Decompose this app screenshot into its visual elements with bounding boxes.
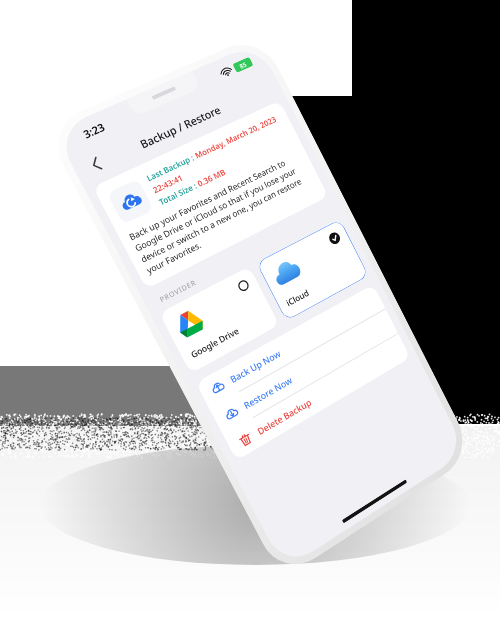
button[interactable]: Google Drive [159,266,279,374]
staticText: Total Size : [157,179,200,207]
staticText: Google Drive [189,325,241,361]
staticText: Back Up Now [228,347,282,385]
staticText: Back up your Favorites and Recent Search… [127,150,317,277]
button[interactable]: Restore Now [209,309,398,434]
staticText: Monday, March 20, 2023 [193,113,278,161]
button[interactable]: Back [80,149,112,179]
button[interactable]: Back Up Now [195,284,385,408]
staticText: 22:43:41 [151,172,185,195]
staticText: Restore Now [241,373,294,411]
staticText: 85 [238,60,249,71]
button[interactable]: Delete Backup [223,334,411,461]
staticText: 3:23 [81,120,107,142]
button[interactable]: iCloud [256,219,369,321]
staticText: 0.36 MB [195,166,227,189]
staticText: Backup / Restore [137,102,224,151]
staticText: Last Backup : [144,151,198,183]
staticText: iCloud [284,287,311,309]
staticText: Delete Backup [255,395,314,437]
staticText: PROVIDER [158,277,199,305]
